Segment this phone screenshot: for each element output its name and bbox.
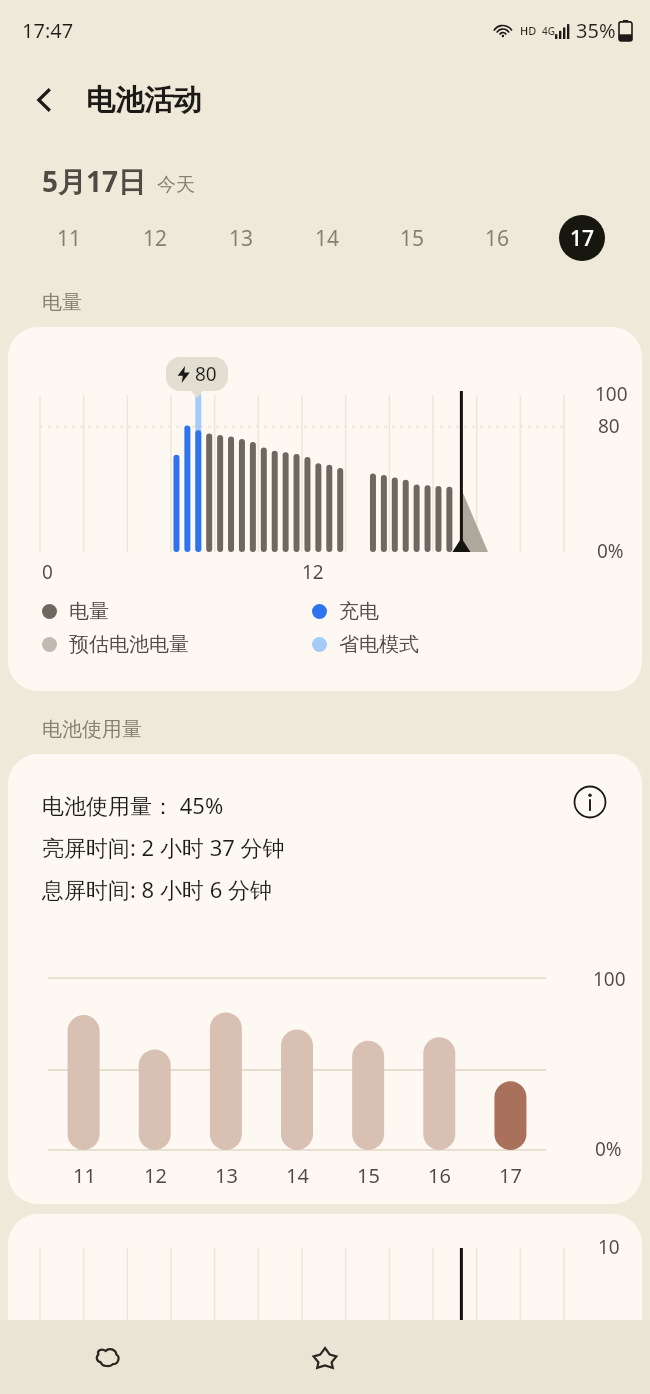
staticText: 今天 <box>157 173 195 197</box>
staticText: 12 <box>143 224 168 253</box>
staticText: 16 <box>485 224 510 253</box>
button[interactable]: 14 <box>284 200 369 276</box>
button[interactable]: Back <box>16 72 72 128</box>
staticText: 电量 <box>69 599 109 624</box>
button[interactable]: 16 <box>454 200 539 276</box>
staticText: 13 <box>229 224 254 253</box>
button[interactable]: 100 <box>8 327 642 691</box>
staticText: HD <box>520 23 537 38</box>
button[interactable]: 11 <box>26 200 112 276</box>
staticText: 80 <box>598 413 620 439</box>
staticText: 电池活动 <box>86 82 202 119</box>
button[interactable]: 15 <box>369 200 454 276</box>
staticText: 11 <box>73 1162 96 1189</box>
staticText: 预估电池电量 <box>69 632 189 657</box>
staticText: 14 <box>315 224 340 253</box>
staticText: 100 <box>595 381 628 407</box>
staticText: 0% <box>595 1136 622 1162</box>
staticText: 0% <box>597 538 624 564</box>
staticText: 100 <box>593 966 626 992</box>
staticText: 13 <box>215 1162 238 1189</box>
button[interactable]: Info <box>568 780 612 824</box>
staticText: 17 <box>499 1162 522 1189</box>
button[interactable]: 17 <box>539 200 624 276</box>
button[interactable]: 10 <box>8 1214 642 1324</box>
staticText: 35% <box>576 17 616 44</box>
staticText: 电量 <box>42 290 82 315</box>
staticText: 80 <box>195 361 217 387</box>
button[interactable]: Recents <box>0 1320 216 1394</box>
staticText: 息屏时间: 8 小时 6 分钟 <box>42 874 272 904</box>
staticText: 14 <box>286 1162 309 1189</box>
staticText: 17:47 <box>22 17 74 44</box>
staticText: 15 <box>400 224 425 253</box>
staticText: 17 <box>570 224 595 253</box>
staticText: 10 <box>598 1234 620 1260</box>
staticText: 0 <box>42 559 53 585</box>
staticText: 4G <box>542 24 555 38</box>
staticText: 12 <box>144 1162 167 1189</box>
staticText: 电池使用量： 45% <box>42 790 224 820</box>
staticText: 省电模式 <box>339 632 419 657</box>
staticText: 12 <box>302 559 324 585</box>
staticText: 16 <box>428 1162 451 1189</box>
staticText: 电池使用量 <box>42 717 142 742</box>
staticText: 亮屏时间: 2 小时 37 分钟 <box>42 832 285 862</box>
button[interactable]: 电池使用量： 45% <box>8 754 642 1204</box>
button[interactable]: 13 <box>198 200 284 276</box>
staticText: 5月17日 <box>42 162 147 200</box>
button[interactable]: Home <box>216 1320 433 1394</box>
staticText: 11 <box>57 224 82 253</box>
button[interactable]: 12 <box>112 200 198 276</box>
staticText: 充电 <box>339 599 379 624</box>
staticText: 15 <box>357 1162 380 1189</box>
